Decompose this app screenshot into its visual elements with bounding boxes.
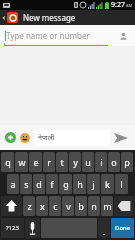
- button[interactable]: Back: [0, 10, 7, 25]
- staticText: n: [91, 200, 97, 212]
- staticText: z: [27, 200, 32, 212]
- button[interactable]: ?123: [1, 218, 24, 238]
- staticText: t: [60, 156, 64, 168]
- staticText: q: [5, 156, 11, 168]
- staticText: 9:27: [111, 0, 125, 10]
- staticText: d: [36, 178, 42, 190]
- staticText: k: [105, 178, 110, 190]
- staticText: e: [33, 156, 39, 168]
- button[interactable]: Backspace: [114, 196, 134, 216]
- button[interactable]: d: [33, 174, 45, 194]
- staticText: r: [47, 156, 51, 168]
- staticText: u: [85, 156, 91, 168]
- button[interactable]: t: [56, 152, 68, 172]
- staticText: New message: [23, 12, 76, 23]
- button[interactable]: h: [73, 174, 86, 194]
- button[interactable]: l: [115, 174, 128, 194]
- staticText: नेपाली: [38, 133, 55, 143]
- button[interactable]: Send: [110, 127, 132, 149]
- button[interactable]: b: [75, 196, 87, 216]
- button[interactable]: s: [20, 174, 32, 194]
- button[interactable]: n: [88, 196, 100, 216]
- button[interactable]: c: [49, 196, 61, 216]
- staticText: a: [10, 178, 16, 190]
- staticText: ?123: [6, 224, 19, 232]
- staticText: b: [78, 200, 84, 212]
- staticText: y: [73, 156, 78, 168]
- button[interactable]: Shift: [1, 196, 22, 216]
- button[interactable]: Voice input: [25, 218, 40, 238]
- staticText: .: [103, 228, 105, 238]
- button[interactable]: q: [1, 152, 14, 172]
- button[interactable]: w: [15, 152, 28, 172]
- button[interactable]: k: [101, 174, 114, 194]
- staticText: m: [103, 200, 112, 212]
- button[interactable]: a: [7, 174, 19, 194]
- staticText: f: [50, 178, 54, 190]
- staticText: g: [63, 178, 69, 190]
- staticText: s: [24, 178, 29, 190]
- staticText: c: [53, 200, 58, 212]
- button[interactable]: e: [29, 152, 42, 172]
- button[interactable]: v: [62, 196, 74, 216]
- staticText: w: [18, 156, 26, 168]
- button[interactable]: m: [101, 196, 113, 216]
- button[interactable]: f: [46, 174, 58, 194]
- button[interactable]: u: [82, 152, 94, 172]
- staticText: j: [92, 178, 95, 190]
- button[interactable]: o: [108, 152, 120, 172]
- button[interactable]: Emoji: [18, 131, 32, 145]
- button[interactable]: Done: [111, 218, 134, 238]
- staticText: AM: [126, 3, 133, 8]
- button[interactable]: x: [36, 196, 48, 216]
- staticText: Done: [115, 224, 131, 232]
- button[interactable]: Add attachment: [3, 130, 18, 145]
- button[interactable]: y: [69, 152, 81, 172]
- staticText: v: [66, 200, 71, 212]
- button[interactable]: p: [121, 152, 133, 172]
- button[interactable]: Pick contact: [116, 29, 130, 43]
- staticText: p: [124, 156, 130, 168]
- staticText: l: [120, 178, 123, 190]
- button[interactable]: i: [95, 152, 107, 172]
- button[interactable]: z: [23, 196, 35, 216]
- button[interactable]: g: [59, 174, 72, 194]
- staticText: i: [100, 156, 103, 168]
- staticText: h: [77, 178, 83, 190]
- staticText: Type name or number: [6, 30, 90, 41]
- button[interactable]: Type name or number: [5, 30, 112, 41]
- button[interactable]: .: [98, 218, 110, 238]
- button[interactable]: j: [87, 174, 100, 194]
- button[interactable]: r: [43, 152, 55, 172]
- staticText: x: [40, 200, 45, 212]
- button[interactable]: नेपाली: [34, 130, 110, 146]
- staticText: o: [111, 156, 117, 168]
